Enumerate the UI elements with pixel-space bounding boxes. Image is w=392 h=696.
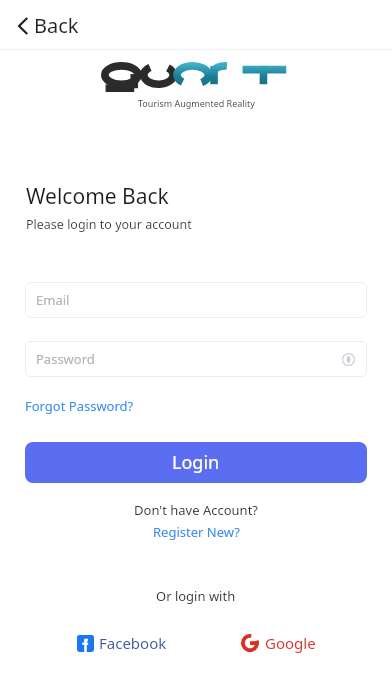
staticText: Back: [34, 12, 79, 39]
staticText: Email: [36, 291, 70, 309]
staticText: Welcome Back: [26, 182, 169, 211]
button[interactable]: Email: [25, 282, 367, 318]
button[interactable]: Forgot Password?: [20, 394, 139, 418]
staticText: Forgot Password?: [25, 397, 134, 415]
button[interactable]: Password: [25, 341, 367, 377]
staticText: Google: [265, 633, 316, 653]
staticText: Facebook: [99, 633, 167, 653]
staticText: Tourism Augmented Reality: [138, 97, 255, 109]
staticText: Please login to your account: [26, 216, 192, 233]
button[interactable]: Show password: [337, 348, 359, 370]
staticText: Login: [172, 450, 220, 475]
staticText: Register New?: [153, 523, 240, 541]
button[interactable]: Login: [25, 442, 367, 483]
button[interactable]: Back: [10, 6, 91, 45]
staticText: Or login with: [156, 587, 236, 605]
staticText: Don't have Account?: [134, 501, 258, 519]
button[interactable]: Facebook: [71, 629, 173, 657]
staticText: Password: [36, 350, 95, 368]
button[interactable]: Google: [235, 629, 322, 657]
button[interactable]: Register New?: [147, 521, 246, 543]
